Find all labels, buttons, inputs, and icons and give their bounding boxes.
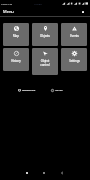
button[interactable]: Recents	[23, 169, 31, 177]
button[interactable]: Account	[82, 11, 84, 13]
button[interactable]: Home	[40, 169, 48, 177]
button[interactable]: Log out	[50, 87, 64, 94]
button[interactable]: History	[3, 48, 29, 71]
button[interactable]: Settings	[61, 48, 87, 71]
staticText: Settings	[69, 59, 80, 63]
staticText: 10:53 AM	[1, 2, 12, 5]
staticText: Object control	[40, 59, 50, 67]
button[interactable]: Events	[61, 23, 87, 46]
staticText: Map	[13, 34, 19, 38]
button[interactable]: Development	[17, 87, 37, 94]
button[interactable]: Objects	[32, 23, 58, 46]
staticText: Events	[70, 34, 79, 38]
button[interactable]: Object control	[32, 48, 58, 75]
staticText: Objects	[40, 34, 50, 38]
button[interactable]: Back	[58, 169, 66, 177]
staticText: LinkBit	[34, 2, 43, 5]
staticText: Menu	[3, 9, 14, 14]
button[interactable]: Map	[3, 23, 29, 46]
staticText: Development	[22, 89, 36, 92]
staticText: History	[11, 59, 21, 63]
staticText: Log out	[55, 89, 63, 92]
